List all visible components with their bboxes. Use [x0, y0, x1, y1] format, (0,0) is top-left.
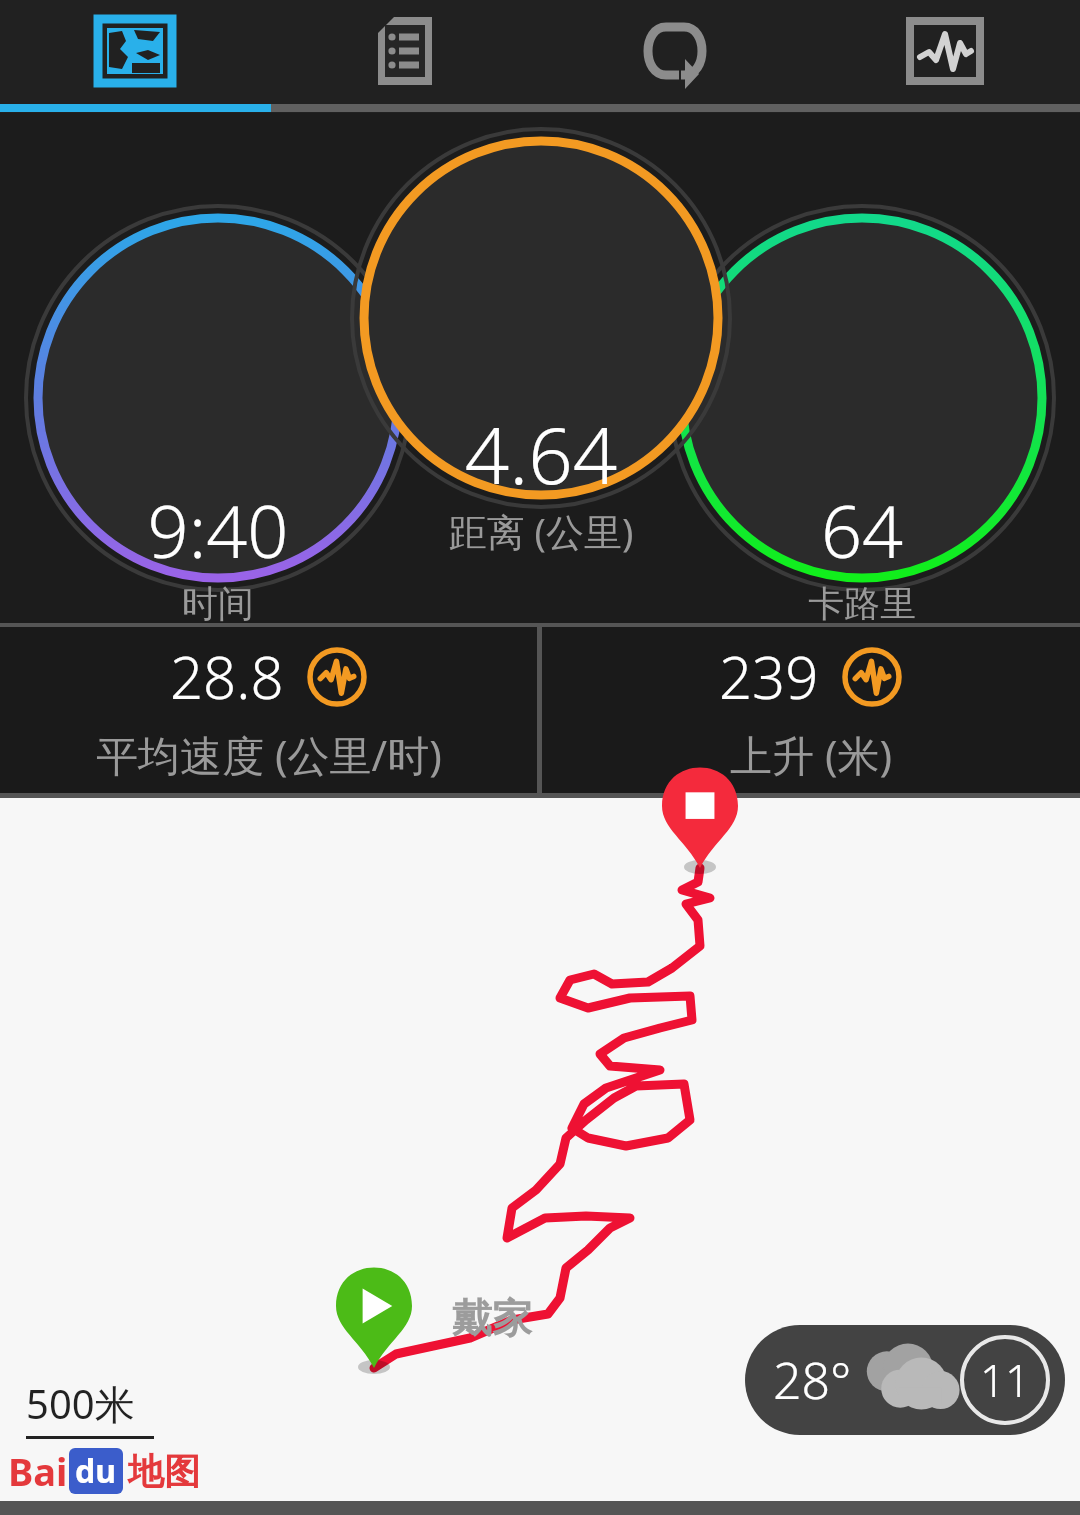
- staticText: 4.64: [281, 401, 801, 507]
- staticText: 28.8: [170, 637, 284, 716]
- button[interactable]: 28.8: [0, 627, 537, 793]
- staticText: Bai: [8, 1445, 68, 1497]
- staticText: 卡路里: [602, 581, 1080, 626]
- staticText: 时间: [0, 581, 478, 626]
- button[interactable]: 239: [542, 627, 1080, 793]
- staticText: 平均速度 (公里/时): [96, 726, 442, 783]
- staticText: 9:40: [0, 481, 478, 579]
- staticText: 戴家: [452, 1293, 532, 1343]
- button[interactable]: Weather 28 degrees: [745, 1325, 1065, 1435]
- staticText: 239: [719, 637, 819, 716]
- button[interactable]: Laps tab: [540, 0, 810, 105]
- staticText: 28°: [773, 1346, 852, 1414]
- staticText: 距离 (公里): [281, 505, 801, 557]
- button[interactable]: Map tab: [0, 0, 270, 105]
- staticText: 上升 (米): [730, 726, 893, 783]
- staticText: 500米: [26, 1376, 135, 1431]
- button[interactable]: Chart tab: [810, 0, 1080, 105]
- button[interactable]: Details tab: [270, 0, 540, 105]
- staticText: 地图: [128, 1449, 200, 1494]
- staticText: 64: [602, 481, 1080, 579]
- staticText: du: [75, 1449, 117, 1493]
- staticText: 11: [980, 1350, 1031, 1410]
